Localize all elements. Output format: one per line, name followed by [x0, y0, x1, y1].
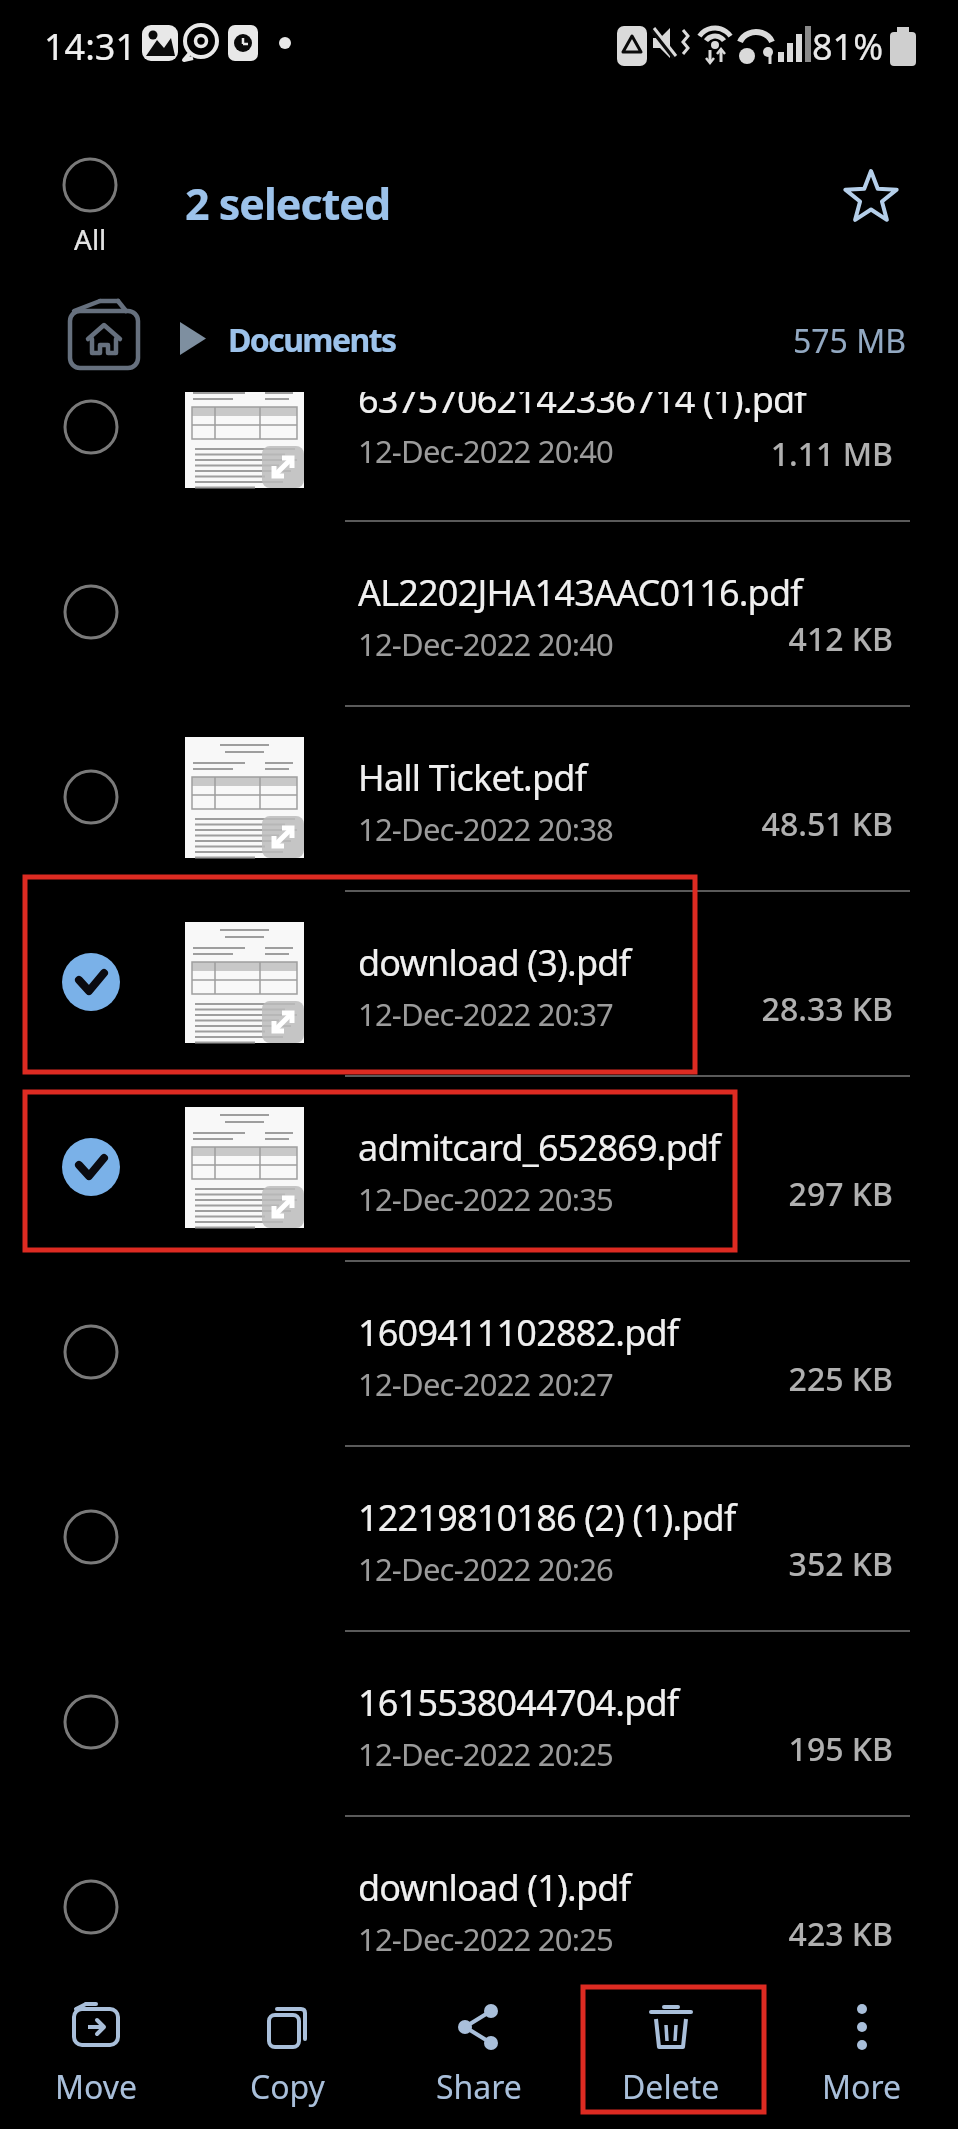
button[interactable]: Move [16, 1985, 176, 2125]
staticText: 195 KB [788, 1727, 893, 1771]
staticText: 1615538044704.pdf [358, 1678, 679, 1727]
staticText: 14:31 [44, 22, 137, 71]
staticText: 575 MB [792, 319, 906, 363]
staticText: 81% [812, 22, 884, 71]
staticText: Move [55, 2065, 138, 2109]
staticText: 12-Dec-2022 20:26 [358, 1548, 614, 1590]
button[interactable]: Hall Ticket.pdf [0, 705, 958, 890]
staticText: 352 KB [788, 1542, 893, 1586]
staticText: Delete [622, 2065, 720, 2109]
staticText: 225 KB [788, 1357, 893, 1401]
staticText: 12-Dec-2022 20:37 [358, 993, 614, 1035]
button[interactable]: download (1).pdf [0, 1815, 958, 1975]
button[interactable] [838, 164, 906, 232]
staticText: download (3).pdf [358, 938, 631, 987]
staticText: 12-Dec-2022 20:40 [358, 623, 614, 665]
button[interactable]: download (3).pdf [0, 890, 958, 1075]
staticText: 12-Dec-2022 20:40 [358, 430, 614, 472]
button[interactable]: 63757062142336714 (1).pdf [0, 392, 958, 520]
button[interactable]: Delete [591, 1985, 751, 2125]
button[interactable]: 1609411102882.pdf [0, 1260, 958, 1445]
staticText: download (1).pdf [358, 1863, 631, 1912]
staticText: 12-Dec-2022 20:25 [358, 1918, 614, 1960]
button[interactable]: 1615538044704.pdf [0, 1630, 958, 1815]
staticText: 12-Dec-2022 20:25 [358, 1733, 614, 1775]
staticText: admitcard_652869.pdf [358, 1123, 720, 1172]
staticText: 297 KB [788, 1172, 893, 1216]
staticText: 1.11 MB [770, 432, 893, 476]
staticText: 1609411102882.pdf [358, 1308, 679, 1357]
button[interactable]: AL2202JHA143AAC0116.pdf [0, 520, 958, 705]
staticText: 28.33 KB [761, 987, 893, 1031]
button[interactable]: Copy [207, 1985, 367, 2125]
button[interactable]: All [42, 145, 138, 250]
button[interactable]: 12219810186 (2) (1).pdf [0, 1445, 958, 1630]
staticText: 63757062142336714 (1).pdf [358, 392, 806, 424]
staticText: Hall Ticket.pdf [358, 753, 587, 802]
button[interactable]: Documents [0, 295, 958, 385]
staticText: 423 KB [788, 1912, 893, 1956]
staticText: 12219810186 (2) (1).pdf [358, 1493, 736, 1542]
button[interactable]: More [782, 1985, 942, 2125]
staticText: Documents [228, 318, 396, 362]
staticText: All [74, 220, 107, 258]
button[interactable]: Share [399, 1985, 559, 2125]
staticText: 48.51 KB [761, 802, 893, 846]
staticText: More [822, 2065, 902, 2109]
staticText: 2 selected [185, 174, 391, 233]
staticText: 12-Dec-2022 20:27 [358, 1363, 614, 1405]
button[interactable]: admitcard_652869.pdf [0, 1075, 958, 1260]
staticText: 412 KB [788, 617, 893, 661]
staticText: AL2202JHA143AAC0116.pdf [358, 568, 802, 617]
staticText: Copy [250, 2065, 325, 2109]
staticText: 12-Dec-2022 20:35 [358, 1178, 614, 1220]
staticText: 12-Dec-2022 20:38 [358, 808, 614, 850]
staticText: Share [436, 2065, 522, 2109]
